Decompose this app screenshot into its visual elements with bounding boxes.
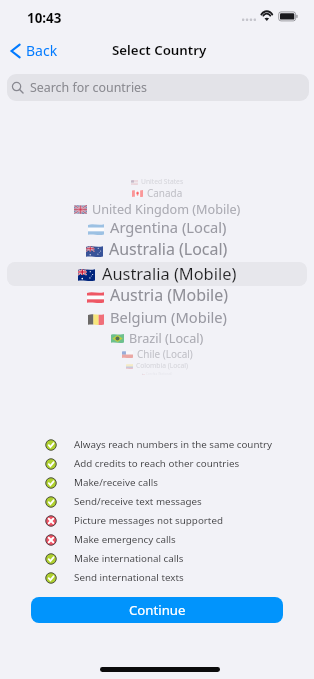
button[interactable]: Search for countries	[7, 74, 309, 101]
staticText: United States	[141, 177, 184, 186]
staticText: Select Country	[112, 41, 207, 59]
staticText: Make international calls	[74, 552, 184, 565]
staticText: Argentina (Local)	[110, 217, 227, 237]
staticText: Chile (Local)	[137, 347, 193, 361]
staticText: Austria (Mobile)	[110, 284, 228, 306]
staticText: Canada	[147, 186, 183, 200]
staticText: Australia (Local)	[109, 238, 228, 260]
button[interactable]: Back	[6, 36, 62, 65]
staticText: Belgium (Mobile)	[110, 307, 227, 327]
staticText: Send international texts	[74, 571, 184, 584]
staticText: 10:43	[27, 9, 62, 27]
staticText: United Kingdom (Mobile)	[92, 200, 241, 217]
button[interactable]: Continue	[31, 597, 283, 623]
staticText: Make emergency calls	[74, 533, 176, 546]
staticText: Brazil (Local)	[129, 329, 204, 346]
staticText: Back	[26, 41, 58, 60]
staticText: Colombia (Local)	[136, 361, 188, 370]
staticText: Make/receive calls	[74, 476, 158, 489]
staticText: Australia (Mobile)	[102, 262, 237, 284]
staticText: Picture messages not supported	[74, 514, 223, 527]
staticText: Continue	[129, 601, 186, 619]
staticText: Search for countries	[30, 79, 148, 96]
staticText: Add credits to reach other countries	[74, 457, 240, 470]
staticText: Always reach numbers in the same country	[74, 438, 273, 451]
staticText: Send/receive text messages	[74, 495, 202, 508]
